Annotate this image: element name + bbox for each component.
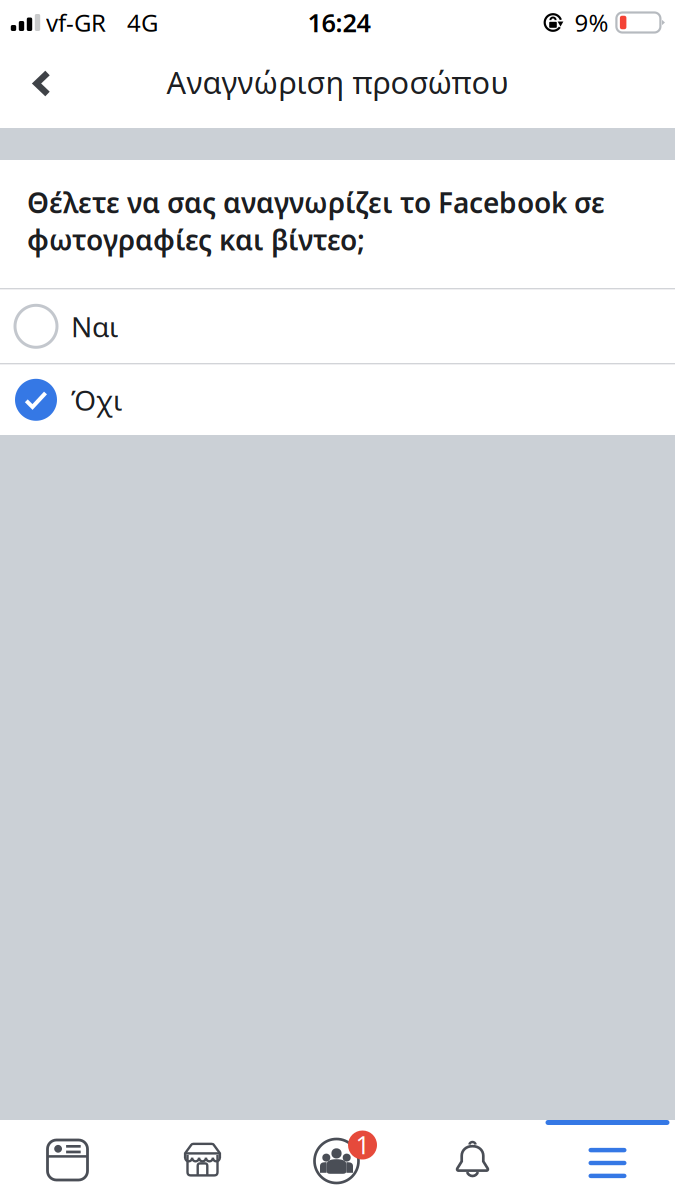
button[interactable]: Menu [540,1120,675,1200]
button[interactable]: News Feed [0,1120,135,1200]
staticText: Αναγνώριση προσώπου [166,62,508,102]
staticText: 1 [355,1128,369,1161]
button[interactable]: Groups [270,1120,405,1200]
staticText: Ναι [71,308,118,345]
staticText: Θέλετε να σας αναγνωρίζει το Facebook σε… [27,184,605,258]
button[interactable]: Όχι [0,365,675,435]
button[interactable]: Back [0,45,84,128]
staticText: 4G [127,7,158,38]
staticText: 16:24 [307,6,370,39]
button[interactable]: Notifications [405,1120,540,1200]
staticText: Όχι [71,381,122,418]
staticText: vf-GR [46,7,106,38]
button[interactable]: Ναι [0,290,675,363]
button[interactable]: Marketplace [135,1120,270,1200]
staticText: 9% [574,7,608,38]
